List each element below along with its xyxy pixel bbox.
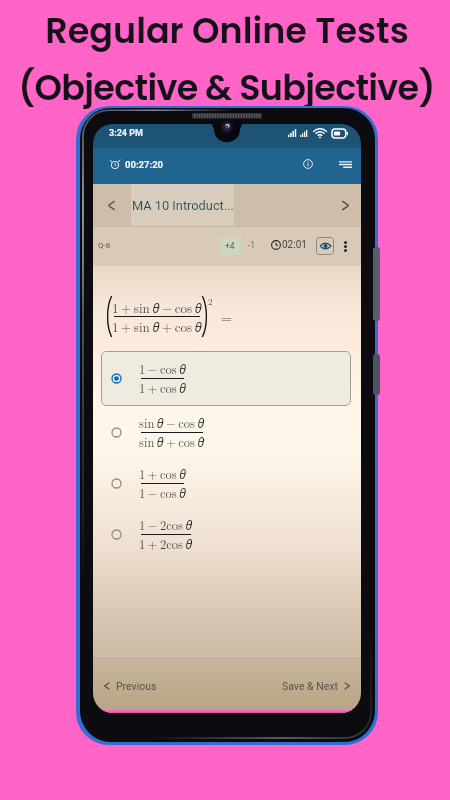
staticText: Q-8 xyxy=(98,241,111,250)
button[interactable]: 1 − 2cos θ xyxy=(101,507,351,562)
staticText: (Objective & Subjective) xyxy=(18,63,435,112)
staticText: 1 + sin θ + cos θ xyxy=(112,317,202,335)
staticText: Previous xyxy=(116,680,157,692)
staticText: MA 10 Introduct... xyxy=(132,198,234,213)
staticText: 1 − cos θ xyxy=(139,360,186,378)
staticText: 3:24 PM xyxy=(109,128,143,139)
staticText: 1 + 2cos θ xyxy=(139,535,193,553)
button[interactable]: Save & Next xyxy=(276,674,361,698)
staticText: 02:01 xyxy=(282,239,307,251)
button[interactable]: sin θ − cos θ xyxy=(101,405,351,460)
staticText: 1 + cos θ xyxy=(139,379,186,397)
staticText: Regular Online Tests xyxy=(45,6,409,55)
staticText: 2 xyxy=(208,295,213,308)
button[interactable]: More options xyxy=(338,239,352,253)
button[interactable]: Next section xyxy=(333,193,357,217)
staticText: +4 xyxy=(225,241,235,251)
staticText: sin θ + cos θ xyxy=(139,433,205,451)
staticText: -1 xyxy=(248,240,256,250)
button[interactable]: Show answer xyxy=(316,237,334,255)
button[interactable]: Info xyxy=(296,152,320,176)
button[interactable]: Menu xyxy=(334,153,356,175)
staticText: Save & Next xyxy=(282,680,338,692)
button[interactable]: 1 + cos θ xyxy=(101,456,351,511)
button[interactable]: MA 10 Introduct... xyxy=(131,184,234,226)
staticText: 1 + cos θ xyxy=(139,465,186,483)
button[interactable]: 1 − cos θ xyxy=(101,351,351,406)
staticText: 1 − cos θ xyxy=(139,484,186,502)
staticText: 00:27:20 xyxy=(125,159,164,170)
button[interactable]: Previous section xyxy=(99,193,123,217)
staticText: 1 − 2cos θ xyxy=(139,516,193,534)
staticText: 1 + sin θ − cos θ xyxy=(112,298,202,316)
staticText: = xyxy=(221,307,232,327)
staticText: sin θ − cos θ xyxy=(139,414,205,432)
button[interactable]: Previous xyxy=(93,674,163,698)
